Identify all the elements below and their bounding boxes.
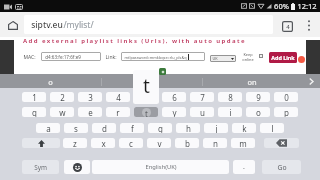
button[interactable]: c xyxy=(119,138,143,148)
button[interactable]: 9 xyxy=(246,92,270,102)
button[interactable]: Sym xyxy=(22,160,59,174)
button[interactable]: o xyxy=(246,107,270,117)
staticText: Link: xyxy=(105,54,117,61)
button[interactable] xyxy=(264,138,299,148)
staticText: d4:63:fe:17:6f:e9 xyxy=(45,54,81,60)
staticText: 60% xyxy=(274,1,289,11)
staticText: o xyxy=(256,107,261,117)
staticText: 7 xyxy=(200,92,205,102)
button[interactable]: d xyxy=(92,123,116,133)
staticText: a xyxy=(46,123,51,133)
button[interactable]: w xyxy=(50,107,74,117)
button[interactable]: h xyxy=(176,123,200,133)
staticText: o xyxy=(48,77,53,87)
button[interactable]: UK xyxy=(210,55,236,62)
staticText: e xyxy=(88,107,93,117)
button[interactable]: 1 xyxy=(22,92,46,102)
staticText: 4 xyxy=(286,23,290,31)
staticText: Keep xyxy=(243,52,253,57)
staticText: r xyxy=(116,107,120,117)
staticText: 5 xyxy=(144,92,149,102)
staticText: d xyxy=(102,123,107,133)
button[interactable]: b xyxy=(175,138,199,148)
button[interactable]: 2 xyxy=(50,92,74,102)
button[interactable]: j xyxy=(204,123,228,133)
button[interactable]: 7 xyxy=(190,92,214,102)
button[interactable]: More options xyxy=(302,18,316,32)
button[interactable]: on xyxy=(202,74,302,89)
button[interactable]: 5 xyxy=(134,92,158,102)
button[interactable]: a xyxy=(36,123,60,133)
button[interactable]: 4 xyxy=(106,92,130,102)
button[interactable]: e xyxy=(78,107,102,117)
button[interactable]: More suggestions xyxy=(302,74,320,89)
staticText: q xyxy=(32,107,37,117)
staticText: /mylist/ xyxy=(63,19,94,31)
button[interactable]: z xyxy=(63,138,87,148)
staticText: . xyxy=(243,162,245,172)
button[interactable]: Tabs xyxy=(282,21,293,32)
button[interactable]: mtlpassword=mmkbqse=rlu_pls&q xyxy=(121,52,205,61)
staticText: b xyxy=(185,138,190,148)
button[interactable]: 0 xyxy=(274,92,298,102)
staticText: t xyxy=(143,73,150,99)
staticText: u xyxy=(200,107,205,117)
staticText: f xyxy=(131,123,134,133)
staticText: UK xyxy=(212,56,218,61)
button[interactable]: y xyxy=(162,107,186,117)
staticText: g xyxy=(158,123,163,133)
staticText: t xyxy=(145,108,148,117)
button[interactable]: Home xyxy=(5,18,20,33)
staticText: x xyxy=(101,138,106,148)
staticText: m xyxy=(239,138,247,148)
button[interactable]: 8 xyxy=(218,92,242,102)
button[interactable]: p xyxy=(274,107,298,117)
staticText: 0 xyxy=(284,92,289,102)
button[interactable]: Add Link xyxy=(269,52,297,63)
button[interactable]: Keep online xyxy=(259,54,263,58)
staticText: Go xyxy=(277,163,287,172)
button[interactable]: i xyxy=(218,107,242,117)
button[interactable]: . xyxy=(233,160,255,174)
staticText: n xyxy=(213,138,218,148)
staticText: v xyxy=(157,138,162,148)
button[interactable] xyxy=(64,160,90,174)
button[interactable]: x xyxy=(91,138,115,148)
staticText: h xyxy=(186,123,191,133)
button[interactable]: f xyxy=(120,123,144,133)
staticText: siptv.eu xyxy=(31,19,63,31)
button[interactable]: 6 xyxy=(162,92,186,102)
button[interactable]: Go xyxy=(262,160,301,174)
button[interactable]: l xyxy=(260,123,284,133)
staticText: j xyxy=(215,123,218,133)
button[interactable]: u xyxy=(190,107,214,117)
button[interactable] xyxy=(22,138,60,148)
staticText: 3 xyxy=(88,92,93,102)
staticText: c xyxy=(129,138,133,148)
staticText: w xyxy=(59,107,66,117)
staticText: 4 xyxy=(116,92,121,102)
staticText: Add external playlist links (Urls), with… xyxy=(23,37,246,45)
button[interactable]: siptv.eu xyxy=(24,15,273,34)
staticText: 1 xyxy=(32,92,37,102)
button[interactable]: m xyxy=(231,138,255,148)
button[interactable]: g xyxy=(148,123,172,133)
button[interactable]: r xyxy=(106,107,130,117)
staticText: i xyxy=(229,107,232,117)
staticText: Sym xyxy=(34,163,47,172)
button[interactable]: t xyxy=(134,107,158,117)
button[interactable]: 3 xyxy=(78,92,102,102)
button[interactable]: n xyxy=(203,138,227,148)
button[interactable]: d4:63:fe:17:6f:e9 xyxy=(41,52,101,61)
staticText: 6 xyxy=(172,92,177,102)
button[interactable]: English(UK) xyxy=(92,160,229,174)
staticText: on xyxy=(247,77,257,87)
button[interactable]: s xyxy=(64,123,88,133)
button[interactable]: q xyxy=(22,107,46,117)
staticText: z xyxy=(73,138,77,148)
button[interactable]: k xyxy=(232,123,256,133)
staticText: online xyxy=(242,57,254,62)
button[interactable]: o xyxy=(0,74,101,89)
button[interactable]: v xyxy=(147,138,171,148)
staticText: Add Link xyxy=(271,54,295,61)
